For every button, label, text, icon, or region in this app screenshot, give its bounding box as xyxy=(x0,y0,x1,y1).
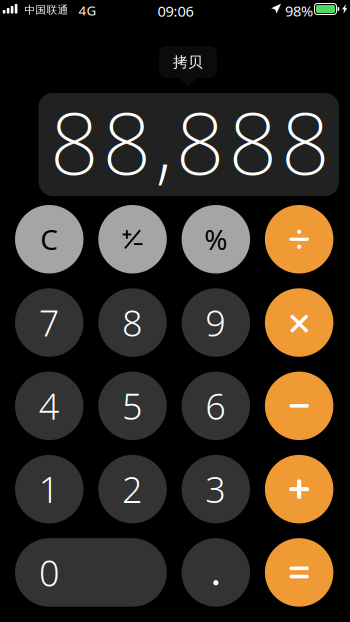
button[interactable]: 3 xyxy=(182,455,250,523)
button[interactable]: Divide xyxy=(265,205,333,273)
staticText: 0 xyxy=(39,548,60,596)
staticText: 9 xyxy=(205,299,226,346)
button[interactable]: Subtract xyxy=(265,372,333,440)
staticText: 中国联通 xyxy=(24,3,68,17)
staticText: 09:06 xyxy=(157,1,193,21)
staticText: 3 xyxy=(205,465,226,513)
staticText: 5 xyxy=(122,382,143,430)
staticText: 88,888 xyxy=(50,85,330,198)
button[interactable]: Plus minus xyxy=(98,205,167,273)
staticText: 2 xyxy=(122,465,143,513)
button[interactable]: 4 xyxy=(15,372,83,440)
staticText: 1 xyxy=(39,465,60,513)
button[interactable]: Decimal point xyxy=(182,538,250,607)
staticText: 拷贝 xyxy=(173,53,203,71)
staticText: 98% xyxy=(285,1,313,20)
button[interactable]: 拷贝 xyxy=(159,46,217,87)
button[interactable]: C xyxy=(15,205,83,273)
staticText: C xyxy=(40,221,58,258)
button[interactable]: 0 xyxy=(15,538,167,607)
button[interactable]: 5 xyxy=(98,372,167,440)
button[interactable]: Add xyxy=(265,455,333,523)
button[interactable]: % xyxy=(182,205,250,273)
button[interactable]: Multiply xyxy=(265,288,333,357)
button[interactable]: 2 xyxy=(98,455,167,523)
staticText: 4G xyxy=(78,1,96,19)
button[interactable]: 8 xyxy=(98,288,167,357)
button[interactable]: 9 xyxy=(182,288,250,357)
staticText: 4 xyxy=(39,382,60,430)
staticText: 6 xyxy=(205,382,226,430)
staticText: 7 xyxy=(39,299,60,346)
button[interactable]: Equals xyxy=(265,538,333,607)
staticText: % xyxy=(204,221,227,258)
button[interactable]: 1 xyxy=(15,455,83,523)
staticText: 8 xyxy=(122,299,143,346)
button[interactable]: 6 xyxy=(182,372,250,440)
button[interactable]: 7 xyxy=(15,288,83,357)
